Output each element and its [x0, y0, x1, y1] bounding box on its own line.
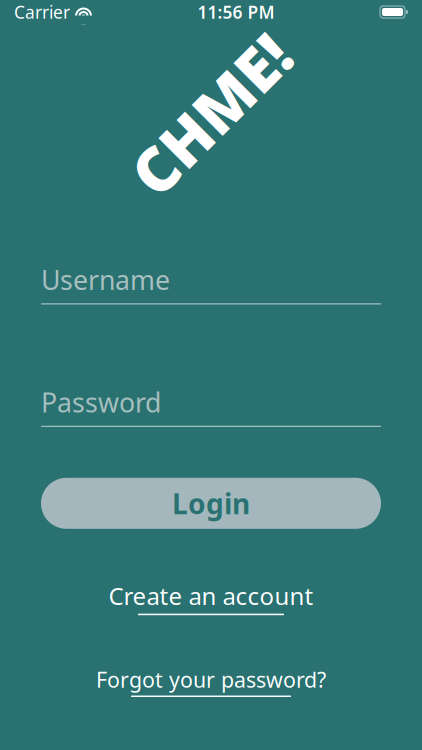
staticText: Create an account — [108, 580, 313, 612]
staticText: Username — [41, 262, 170, 297]
staticText: Login — [172, 485, 250, 522]
staticText: Forgot your password? — [96, 665, 326, 693]
staticText: Carrier — [14, 0, 70, 23]
staticText: CHME! — [112, 73, 310, 155]
button[interactable]: Login — [41, 478, 381, 529]
button[interactable]: Forgot your password? — [82, 659, 340, 703]
button[interactable]: Create an account — [94, 574, 327, 621]
staticText: Password — [41, 384, 161, 420]
staticText: 11:56 PM — [197, 0, 274, 23]
